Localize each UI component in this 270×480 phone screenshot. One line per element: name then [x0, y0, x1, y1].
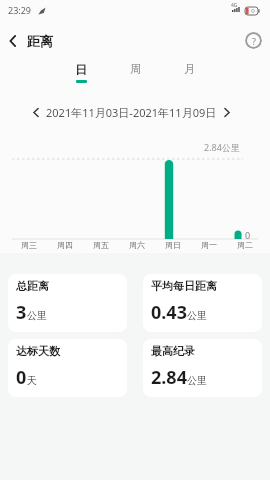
staticText: 2.84 — [151, 365, 187, 390]
staticText: 日 — [75, 62, 87, 77]
staticText: 周五 — [93, 240, 109, 250]
button[interactable]: 达标天数 — [8, 339, 127, 397]
staticText: ? — [252, 35, 256, 47]
staticText: 0.43 — [151, 300, 187, 325]
staticText: 公里 — [187, 309, 207, 322]
staticText: 4G — [231, 2, 238, 9]
staticText: 23:29 — [8, 4, 32, 16]
staticText: 天 — [27, 374, 37, 387]
staticText: 平均每日距离 — [151, 279, 217, 293]
button[interactable]: 日 — [54, 62, 108, 83]
button[interactable]: 月 — [162, 62, 216, 76]
button[interactable]: ? — [245, 32, 262, 49]
staticText: 距离 — [27, 33, 53, 49]
staticText: 最高纪录 — [151, 344, 195, 358]
staticText: 周三 — [21, 240, 37, 250]
staticText: 周日 — [165, 240, 181, 250]
staticText: 总距离 — [16, 279, 49, 293]
staticText: 0 — [245, 229, 251, 241]
staticText: 月 — [184, 62, 195, 76]
staticText: 达标天数 — [16, 344, 60, 358]
button[interactable]: 最高纪录 — [143, 339, 262, 397]
staticText: 2.84公里 — [204, 141, 240, 153]
staticText: 公里 — [187, 374, 207, 387]
staticText: 周四 — [57, 240, 73, 250]
staticText: 0 — [16, 365, 27, 390]
staticText: 周一 — [201, 240, 217, 250]
button[interactable]: 总距离 — [8, 274, 127, 332]
button[interactable]: 2021年11月03日-2021年11月09日 — [0, 103, 266, 121]
staticText: 周 — [130, 62, 141, 76]
button[interactable]: 平均每日距离 — [143, 274, 262, 332]
button[interactable] — [4, 32, 22, 50]
staticText: 2021年11月03日-2021年11月09日 — [46, 105, 217, 120]
staticText: 周六 — [129, 240, 145, 250]
staticText: 公里 — [27, 309, 47, 322]
staticText: 周二 — [237, 240, 253, 250]
staticText: 3 — [16, 300, 27, 325]
button[interactable]: 周 — [108, 62, 162, 76]
